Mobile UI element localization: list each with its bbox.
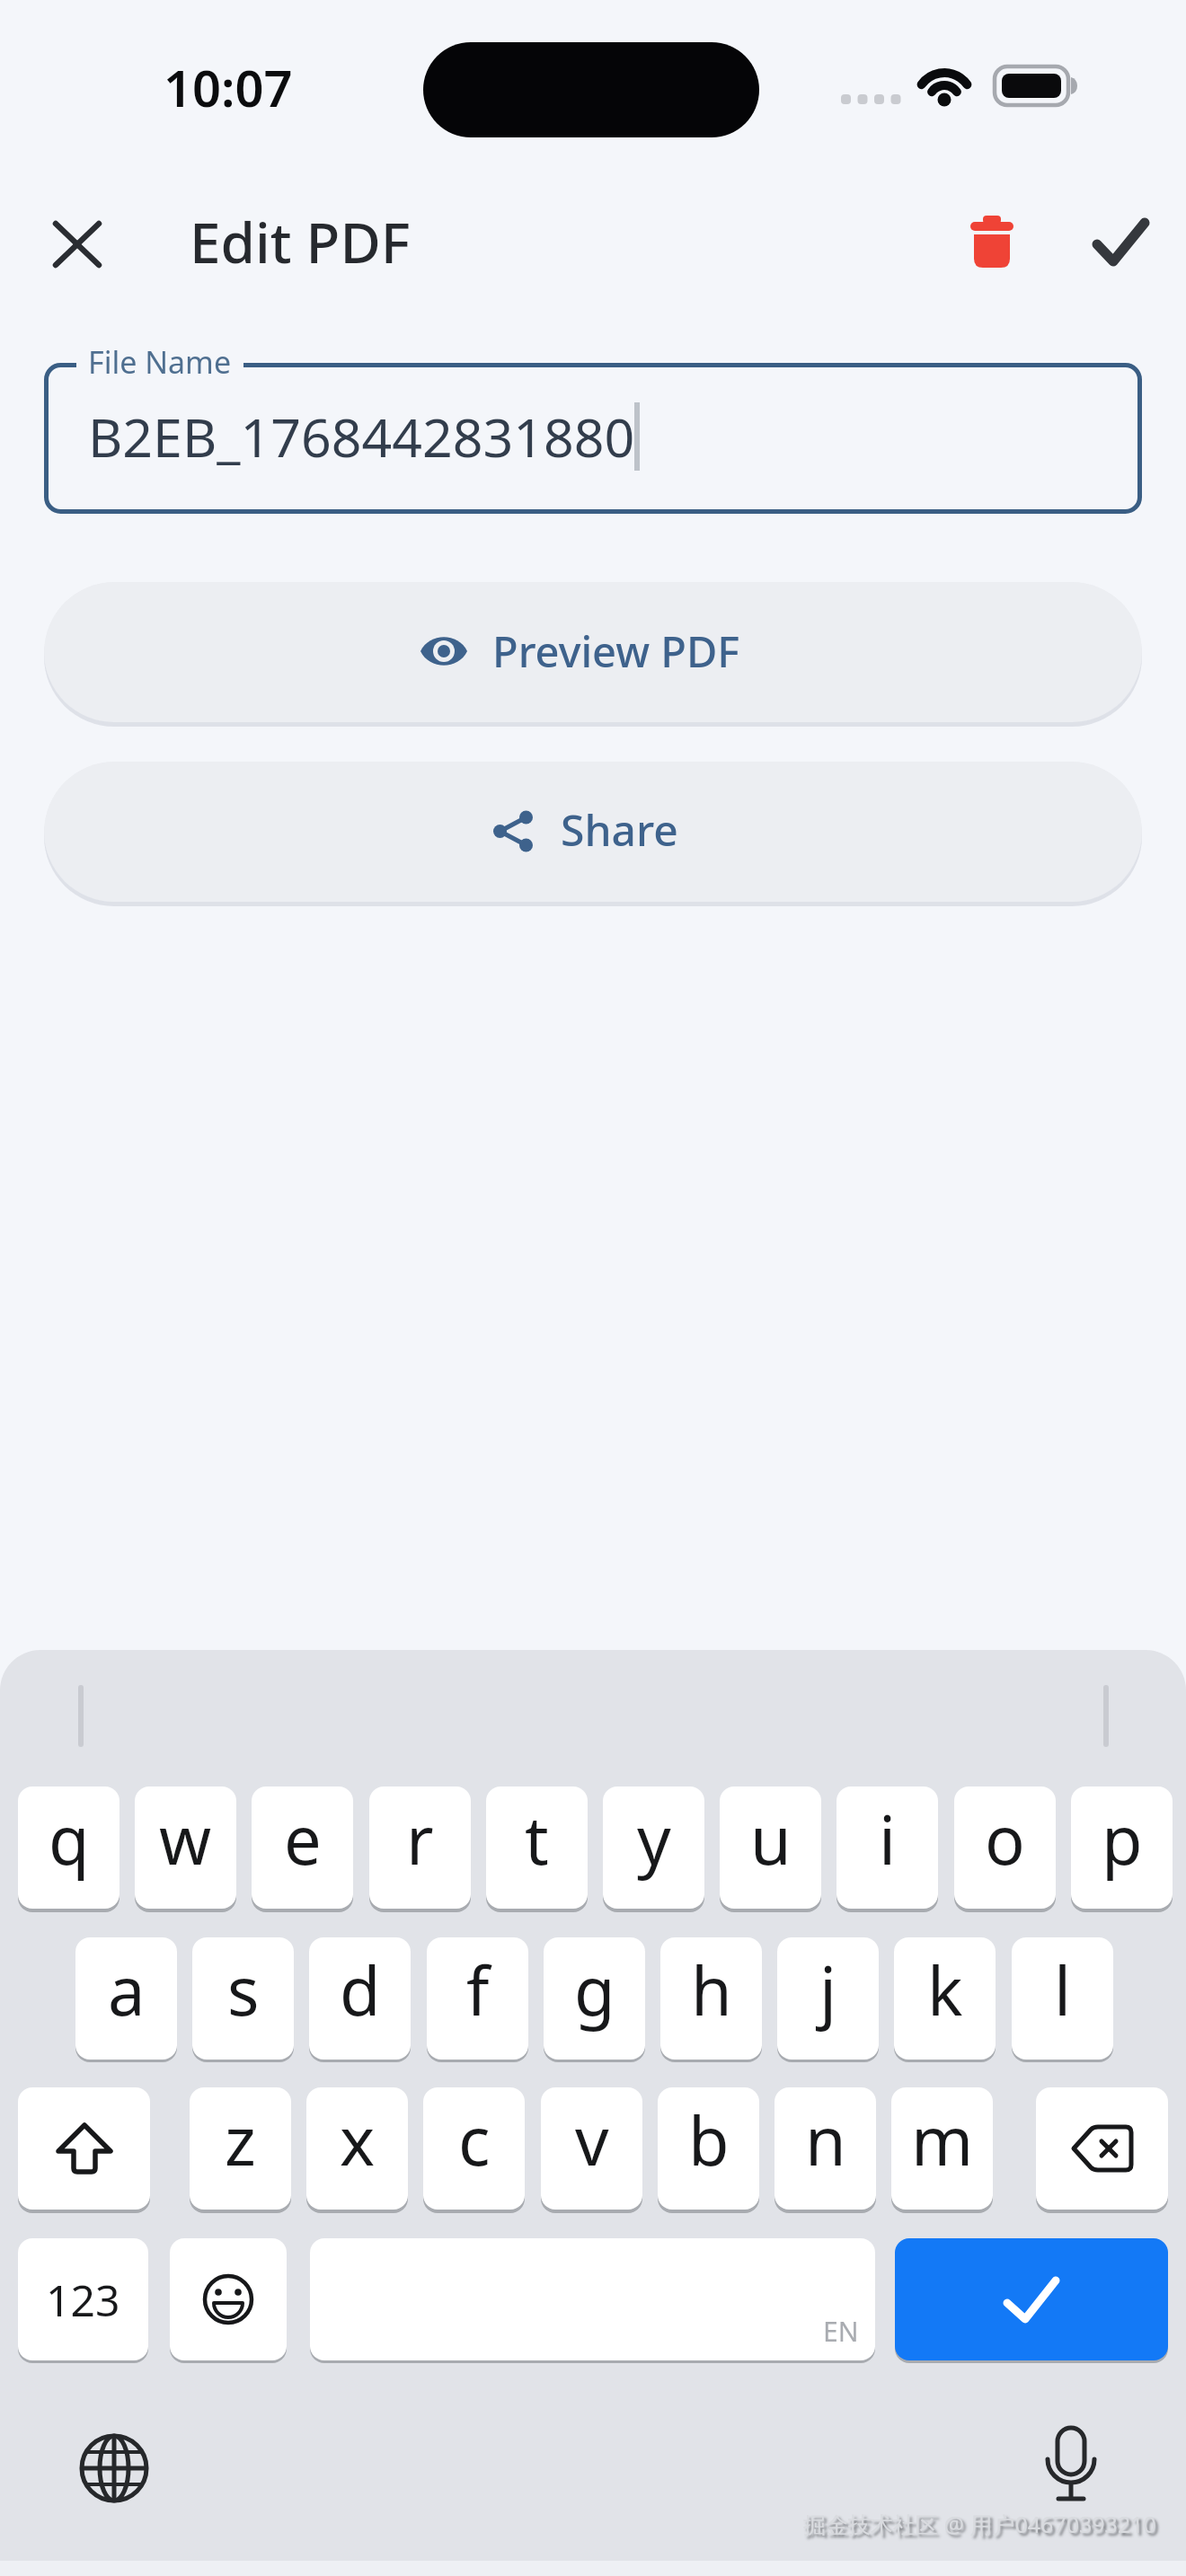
button[interactable]: i	[836, 1786, 938, 1909]
button[interactable]: z	[190, 2087, 291, 2210]
staticText: B2EB_1768442831880	[88, 401, 635, 472]
button[interactable]: t	[486, 1786, 588, 1909]
button[interactable]: f	[427, 1937, 528, 2060]
staticText: Edit PDF	[190, 204, 411, 279]
staticText: 10:07	[164, 53, 293, 121]
staticText: u	[750, 1794, 792, 1884]
staticText: j	[819, 1945, 837, 2035]
button[interactable]: n	[774, 2087, 876, 2210]
button[interactable]: r	[369, 1786, 471, 1909]
button[interactable]: Preview PDF	[44, 582, 1142, 722]
staticText: EN	[823, 2313, 859, 2350]
button[interactable]: u	[720, 1786, 821, 1909]
staticText: x	[340, 2095, 376, 2185]
button[interactable]: k	[894, 1937, 996, 2060]
staticText: m	[911, 2095, 974, 2185]
staticText: v	[575, 2095, 609, 2185]
staticText: b	[688, 2095, 730, 2185]
staticText: Share	[561, 800, 678, 859]
button[interactable]: x	[306, 2087, 408, 2210]
button[interactable]: o	[954, 1786, 1056, 1909]
staticText: r	[406, 1794, 434, 1884]
button[interactable]: s	[192, 1937, 294, 2060]
button[interactable]: a	[75, 1937, 177, 2060]
button[interactable]	[960, 208, 1024, 273]
staticText: t	[525, 1794, 549, 1884]
button[interactable]: l	[1012, 1937, 1113, 2060]
staticText: p	[1102, 1794, 1143, 1884]
button[interactable]: y	[603, 1786, 704, 1909]
staticText: z	[225, 2095, 256, 2185]
button[interactable]: b	[658, 2087, 759, 2210]
button[interactable]: j	[777, 1937, 879, 2060]
button[interactable]	[18, 2087, 150, 2210]
button[interactable]: Share	[44, 762, 1142, 902]
button[interactable]	[1087, 212, 1155, 277]
button[interactable]: q	[18, 1786, 119, 1909]
staticText: l	[1054, 1945, 1072, 2035]
button[interactable]	[1036, 2087, 1168, 2210]
staticText: q	[49, 1794, 90, 1884]
staticText: File Name	[88, 341, 232, 383]
button[interactable]: g	[544, 1937, 645, 2060]
button[interactable]: m	[891, 2087, 993, 2210]
staticText: a	[108, 1945, 146, 2035]
staticText: g	[574, 1945, 615, 2035]
staticText: d	[340, 1945, 381, 2035]
button[interactable]: e	[252, 1786, 353, 1909]
staticText: e	[284, 1794, 322, 1884]
staticText: o	[985, 1794, 1025, 1884]
button[interactable]	[45, 213, 110, 278]
staticText: i	[879, 1794, 897, 1884]
button[interactable]: B2EB_1768442831880	[44, 363, 1142, 514]
button[interactable]: w	[135, 1786, 236, 1909]
button[interactable]: EN	[310, 2238, 875, 2360]
button[interactable]	[170, 2238, 287, 2360]
staticText: w	[159, 1794, 212, 1884]
button[interactable]: c	[423, 2087, 525, 2210]
button[interactable]: h	[660, 1937, 762, 2060]
staticText: s	[227, 1945, 260, 2035]
staticText: Preview PDF	[492, 622, 740, 680]
staticText: k	[927, 1945, 963, 2035]
staticText: n	[805, 2095, 846, 2185]
staticText: h	[691, 1945, 732, 2035]
button[interactable]: 123	[18, 2238, 148, 2360]
button[interactable]: v	[541, 2087, 642, 2210]
staticText: c	[458, 2095, 491, 2185]
staticText: f	[466, 1945, 490, 2035]
staticText: 掘金技术社区 @ 用户04670393210	[803, 2509, 1156, 2539]
staticText: y	[637, 1794, 671, 1884]
button[interactable]	[895, 2238, 1168, 2360]
staticText: 123	[46, 2271, 120, 2329]
button[interactable]: d	[309, 1937, 411, 2060]
button[interactable]: p	[1071, 1786, 1173, 1909]
